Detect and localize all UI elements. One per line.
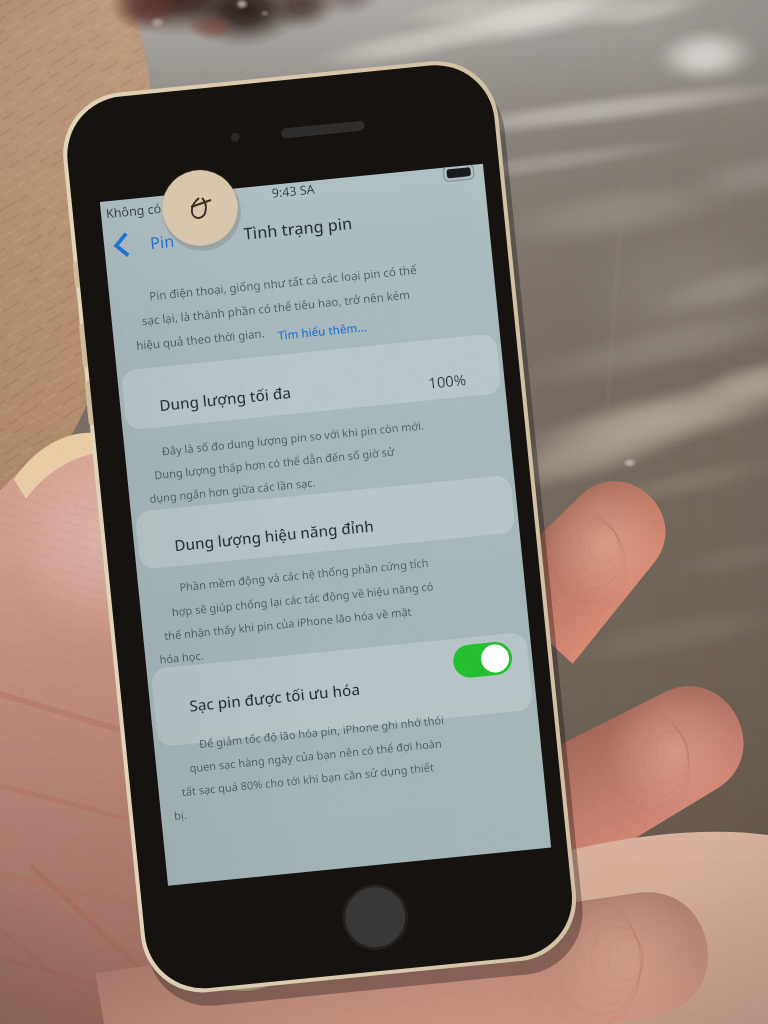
button[interactable]: Dung lượng hiệu năng đỉnh: [134, 508, 512, 572]
button[interactable]: Back to Pin: [108, 228, 194, 270]
button[interactable]: Sạc pin được tối ưu hóa: [148, 664, 526, 748]
button[interactable]: Tìm hiểu thêm: [271, 322, 371, 348]
button[interactable]: Home button: [333, 882, 411, 960]
button[interactable]: Dung lượng tối đa 100%: [120, 366, 498, 434]
button[interactable]: Optimised battery charging toggle: [443, 638, 519, 688]
